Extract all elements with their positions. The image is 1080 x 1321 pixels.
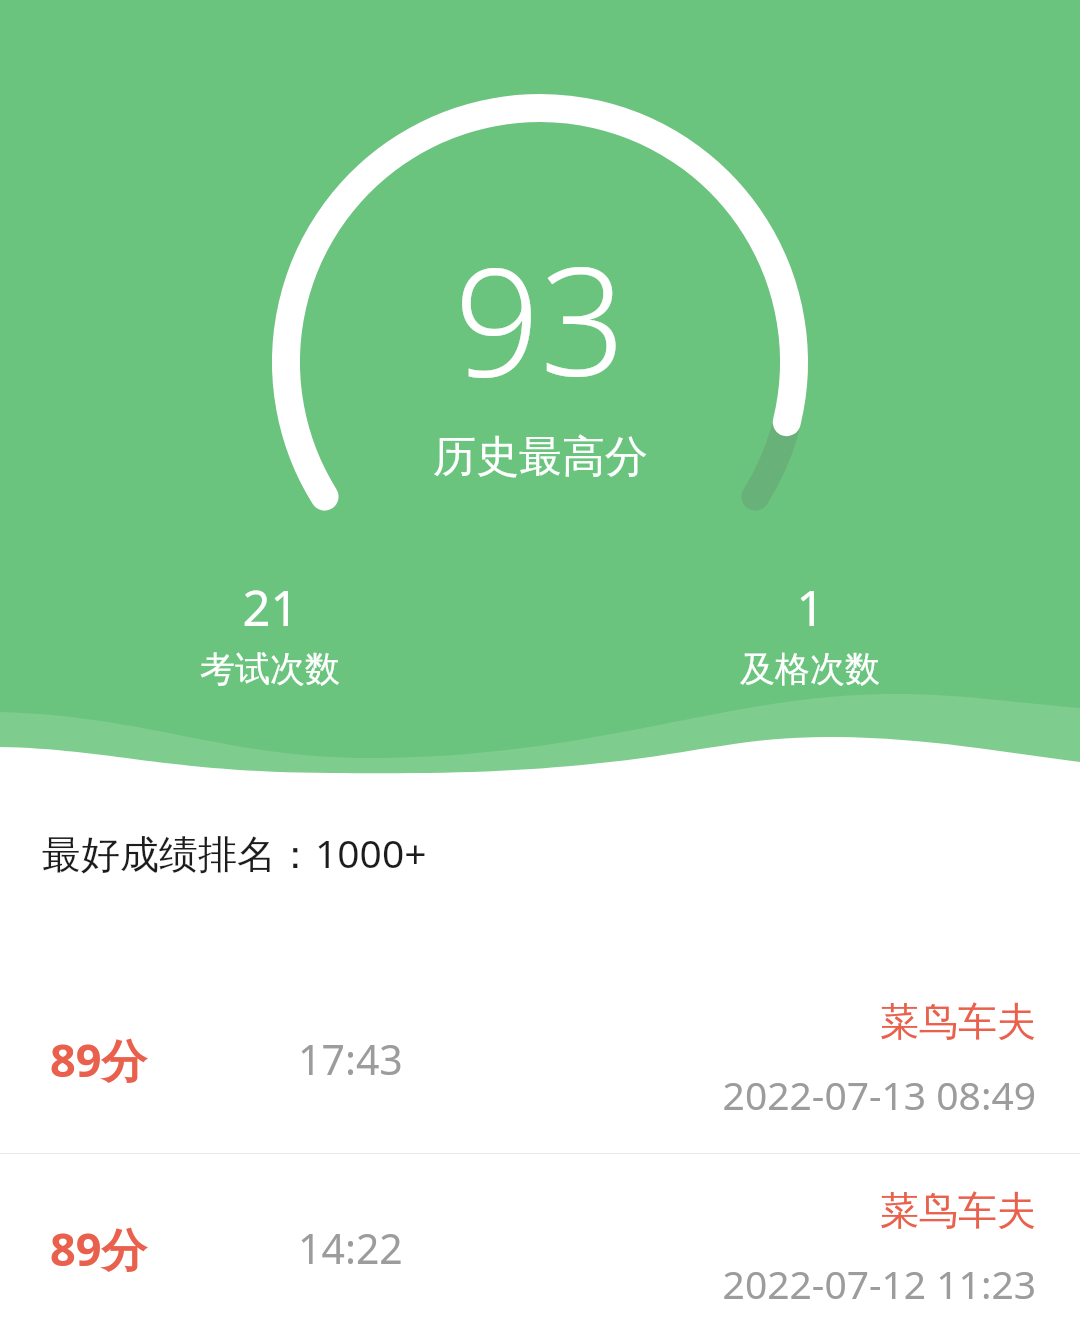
staticText: 最好成绩排名：1000+ [42,826,427,879]
staticText: 2022-07-13 08:49 [722,1068,1036,1121]
staticText: 14:22 [298,1220,403,1276]
staticText: 历史最高分 [433,430,648,484]
staticText: 考试次数 [200,647,340,691]
staticText: 89分 [50,1218,147,1279]
staticText: 菜鸟车夫 [880,1186,1036,1235]
button[interactable]: 89分 [0,1154,1080,1321]
staticText: 89分 [50,1029,147,1090]
button[interactable]: 21 [0,574,540,691]
staticText: 菜鸟车夫 [880,997,1036,1046]
button[interactable]: 1 [540,574,1080,691]
staticText: 17:43 [298,1031,403,1087]
staticText: 93 [454,216,626,420]
staticText: 及格次数 [740,647,880,691]
staticText: 1 [796,574,825,641]
staticText: 2022-07-12 11:23 [722,1257,1036,1310]
staticText: 21 [242,574,299,641]
button[interactable]: 89分 [0,965,1080,1153]
